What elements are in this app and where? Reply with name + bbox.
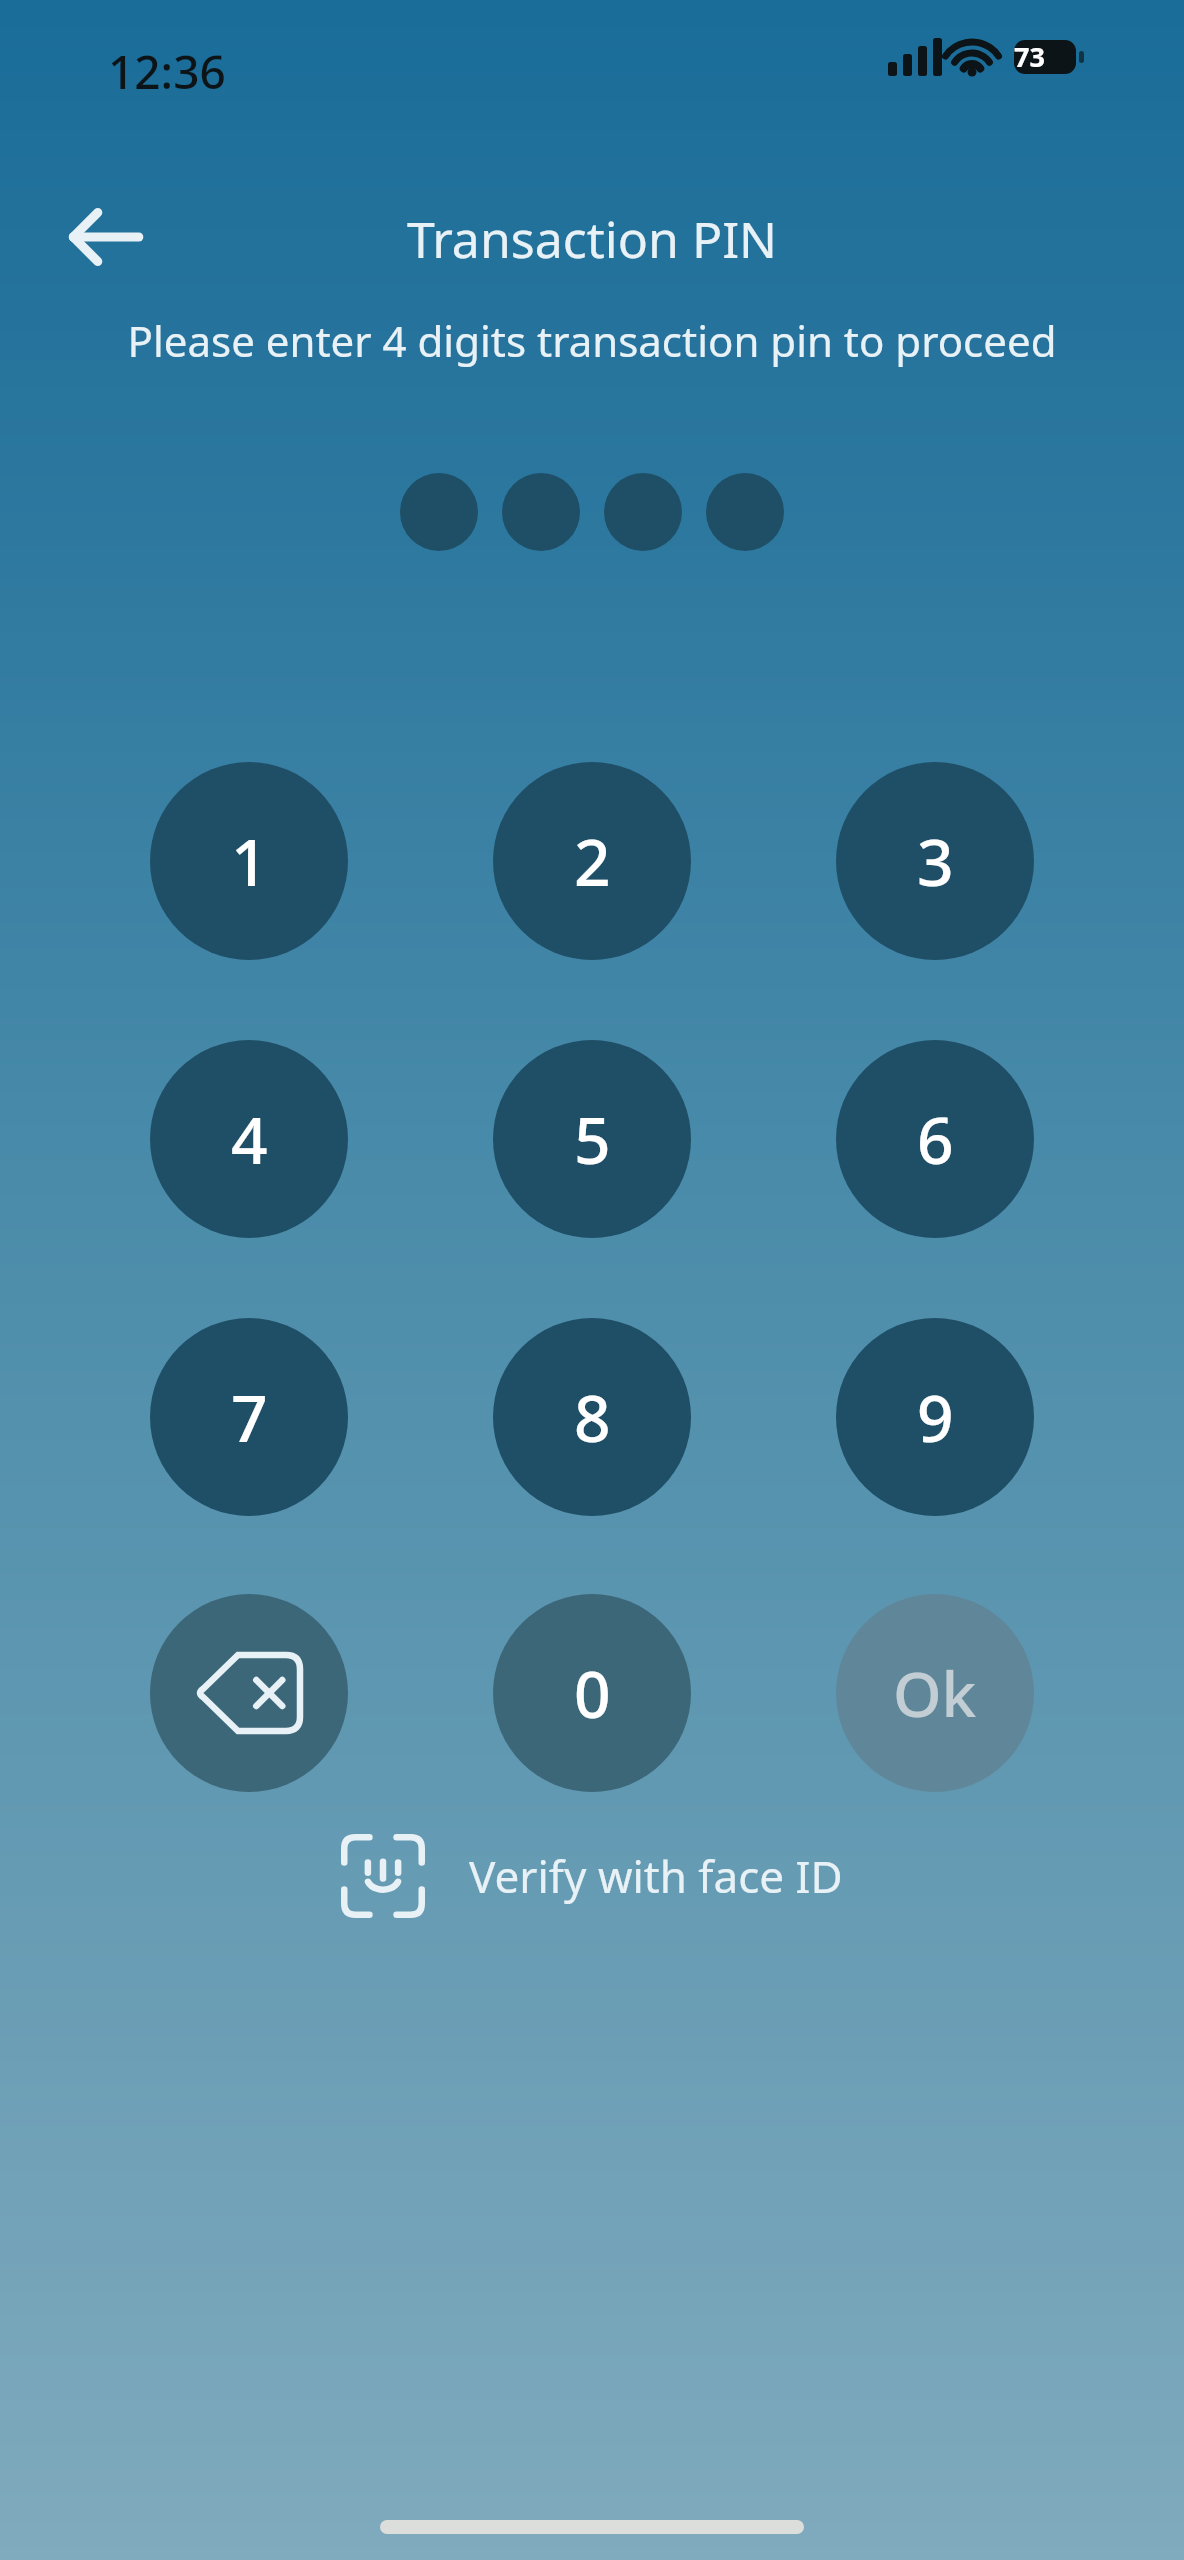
button[interactable]: 6 bbox=[836, 1040, 1034, 1238]
staticText: 4 bbox=[231, 1096, 268, 1183]
button[interactable]: Verify with face ID bbox=[333, 1828, 851, 1924]
button[interactable]: Back bbox=[42, 174, 168, 300]
staticText: Ok bbox=[893, 1651, 977, 1735]
button[interactable]: 3 bbox=[836, 762, 1034, 960]
staticText: 5 bbox=[574, 1096, 611, 1183]
staticText: 0 bbox=[574, 1650, 611, 1737]
button[interactable]: Backspace bbox=[150, 1594, 348, 1792]
staticText: 73 bbox=[1014, 38, 1045, 75]
button[interactable]: 5 bbox=[493, 1040, 691, 1238]
staticText: 7 bbox=[231, 1374, 268, 1461]
button[interactable]: 8 bbox=[493, 1318, 691, 1516]
button[interactable]: 9 bbox=[836, 1318, 1034, 1516]
staticText: Please enter 4 digits transaction pin to… bbox=[60, 312, 1124, 369]
staticText: 12:36 bbox=[108, 40, 226, 103]
staticText: 3 bbox=[917, 818, 954, 905]
button[interactable]: 1 bbox=[150, 762, 348, 960]
button[interactable]: 0 bbox=[493, 1594, 691, 1792]
button[interactable]: 7 bbox=[150, 1318, 348, 1516]
button[interactable]: 2 bbox=[493, 762, 691, 960]
staticText: 6 bbox=[917, 1096, 954, 1183]
button[interactable]: 4 bbox=[150, 1040, 348, 1238]
staticText: 9 bbox=[917, 1374, 954, 1461]
staticText: 2 bbox=[574, 818, 611, 905]
button[interactable]: Ok bbox=[836, 1594, 1034, 1792]
staticText: Transaction PIN bbox=[0, 205, 1184, 273]
staticText: Verify with face ID bbox=[469, 1846, 843, 1906]
staticText: 8 bbox=[574, 1374, 611, 1461]
staticText: 1 bbox=[231, 818, 268, 905]
